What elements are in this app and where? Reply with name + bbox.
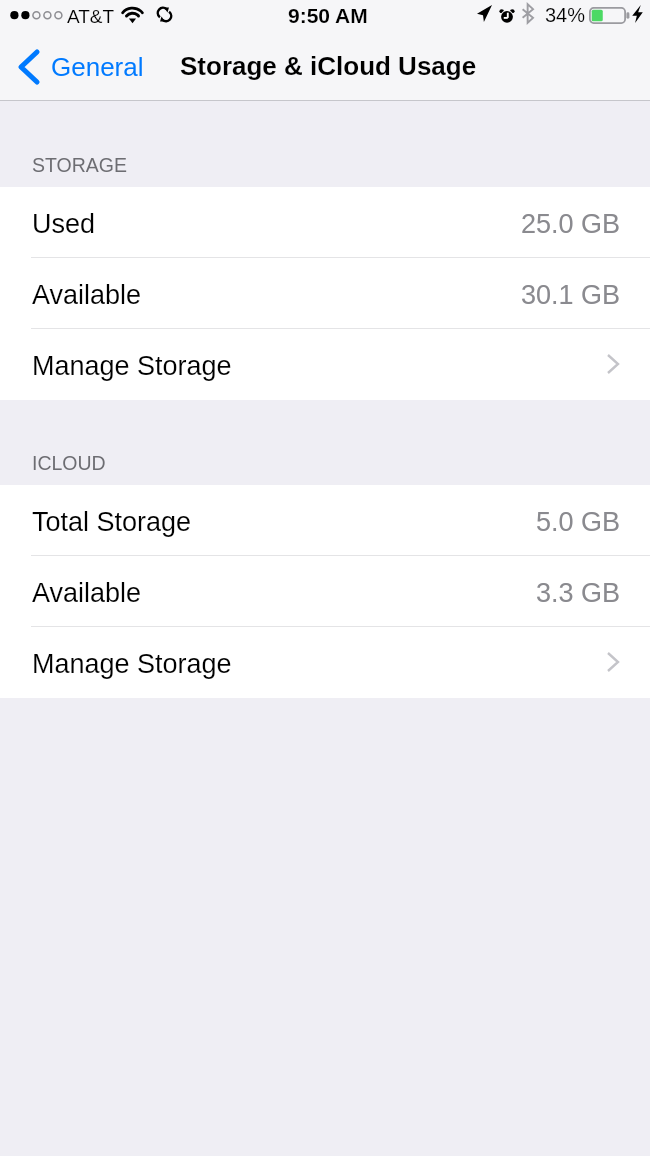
staticText: Manage Storage bbox=[32, 351, 232, 381]
staticText: 5.0 GB bbox=[536, 507, 621, 537]
other: Manage Storage bbox=[606, 651, 620, 673]
staticText: 25.0 GB bbox=[521, 209, 621, 239]
staticText: 34% bbox=[545, 4, 586, 26]
staticText: Available bbox=[32, 280, 142, 310]
button[interactable]: General bbox=[14, 36, 150, 101]
button[interactable]: Available bbox=[0, 258, 650, 329]
staticText: Total Storage bbox=[32, 507, 192, 537]
staticText: AT&T bbox=[67, 6, 115, 27]
staticText: 3.3 GB bbox=[536, 578, 621, 608]
staticText: Used bbox=[32, 209, 96, 239]
staticText: 30.1 GB bbox=[521, 280, 621, 310]
button[interactable]: Available bbox=[0, 556, 650, 627]
button[interactable]: Used bbox=[0, 187, 650, 258]
staticText: STORAGE bbox=[32, 154, 127, 176]
button[interactable]: Manage Storage bbox=[0, 627, 650, 698]
button[interactable]: Manage Storage bbox=[0, 329, 650, 400]
staticText: Manage Storage bbox=[32, 649, 232, 679]
other: Manage Storage bbox=[606, 353, 620, 375]
staticText: Storage & iCloud Usage bbox=[180, 51, 477, 80]
staticText: General bbox=[51, 52, 144, 81]
staticText: Available bbox=[32, 578, 142, 608]
staticText: ICLOUD bbox=[32, 452, 106, 474]
staticText: 9:50 AM bbox=[288, 4, 368, 27]
button[interactable]: Total Storage bbox=[0, 485, 650, 556]
